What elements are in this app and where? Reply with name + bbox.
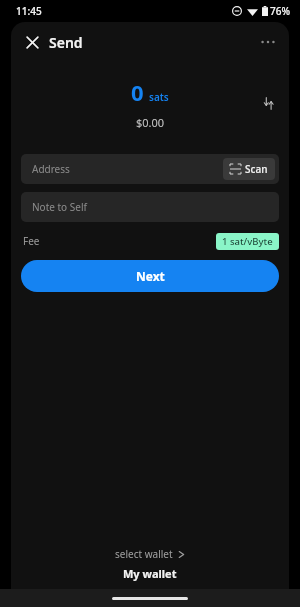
button[interactable]: Switch currency [255, 90, 281, 116]
staticText: 1 sat/vByte [222, 235, 273, 248]
staticText: 76% [270, 4, 290, 18]
staticText: Send [49, 33, 83, 52]
button[interactable]: Next [21, 260, 279, 292]
staticText: select wallet [115, 547, 173, 561]
staticText: sats [149, 90, 169, 104]
other: Close [25, 35, 40, 50]
button[interactable]: Fee [21, 231, 279, 251]
button[interactable]: Close [19, 29, 89, 56]
button[interactable]: Note to Self [21, 192, 279, 222]
staticText: 11:45 [16, 4, 42, 18]
button[interactable]: 1 sat/vByte [216, 233, 279, 250]
staticText: My wallet [123, 566, 177, 581]
staticText: Address [32, 162, 70, 176]
button[interactable]: More options [255, 29, 281, 55]
button[interactable]: select wallet [107, 544, 193, 564]
staticText: Fee [23, 234, 40, 248]
button[interactable]: Address [21, 154, 279, 184]
staticText: Scan [245, 162, 268, 176]
staticText: $0.00 [136, 115, 165, 130]
staticText: Note to Self [32, 200, 87, 214]
button[interactable]: Scan [223, 158, 275, 180]
staticText: 0 [131, 77, 144, 107]
staticText: Next [136, 268, 165, 284]
